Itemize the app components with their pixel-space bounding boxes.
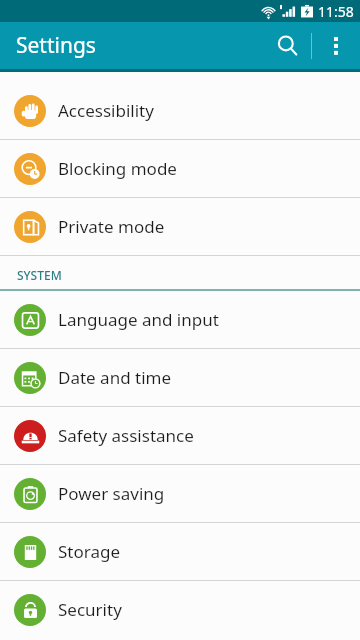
button[interactable]: Storage [0,523,360,580]
button[interactable]: Date and time [0,349,360,406]
button[interactable]: Search [263,22,311,69]
staticText: Storage [58,540,121,563]
staticText: Power saving [58,482,165,505]
button[interactable]: Power saving [0,465,360,522]
staticText: Language and input [58,308,219,331]
staticText: Blocking mode [58,157,177,180]
button[interactable]: Blocking mode [0,140,360,197]
staticText: Private mode [58,215,165,238]
staticText: Safety assistance [58,424,194,447]
staticText: Security [58,598,122,621]
staticText: SYSTEM [17,267,62,283]
button[interactable]: Language and input [0,291,360,348]
staticText: Settings [16,31,96,60]
button[interactable]: Security [0,581,360,638]
button[interactable]: Accessibility [0,82,360,139]
staticText: Accessibility [58,99,154,122]
button[interactable]: More options [312,22,360,69]
button[interactable]: Safety assistance [0,407,360,464]
staticText: 11:58 [318,2,354,21]
staticText: Date and time [58,366,172,389]
button[interactable]: Private mode [0,198,360,255]
